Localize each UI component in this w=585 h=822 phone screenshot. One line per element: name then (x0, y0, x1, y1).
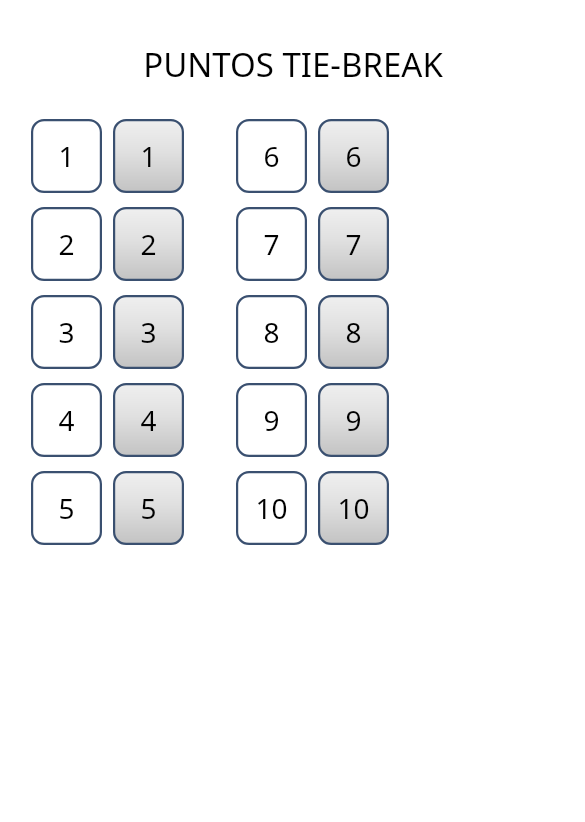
button[interactable]: 3 (113, 295, 184, 369)
button[interactable]: 8 (318, 295, 389, 369)
staticText: 3 (140, 313, 157, 351)
staticText: 6 (263, 137, 280, 175)
staticText: 5 (140, 489, 157, 527)
staticText: 1 (58, 137, 75, 175)
staticText: 10 (255, 489, 288, 527)
staticText: 8 (345, 313, 362, 351)
button[interactable]: 9 (236, 383, 307, 457)
button[interactable]: 2 (113, 207, 184, 281)
staticText: 10 (337, 489, 370, 527)
staticText: 7 (345, 225, 362, 263)
button[interactable]: 7 (236, 207, 307, 281)
staticText: 9 (345, 401, 362, 439)
button[interactable]: 7 (318, 207, 389, 281)
button[interactable]: 6 (236, 119, 307, 193)
staticText: 2 (58, 225, 75, 263)
staticText: 4 (140, 401, 157, 439)
staticText: 2 (140, 225, 157, 263)
button[interactable]: 6 (318, 119, 389, 193)
button[interactable]: 3 (31, 295, 102, 369)
staticText: 8 (263, 313, 280, 351)
staticText: 7 (263, 225, 280, 263)
button[interactable]: 10 (318, 471, 389, 545)
button[interactable]: 5 (31, 471, 102, 545)
button[interactable]: 4 (31, 383, 102, 457)
staticText: 1 (140, 137, 157, 175)
button[interactable]: 4 (113, 383, 184, 457)
staticText: 6 (345, 137, 362, 175)
staticText: PUNTOS TIE-BREAK (143, 42, 443, 87)
button[interactable]: 8 (236, 295, 307, 369)
staticText: 9 (263, 401, 280, 439)
button[interactable]: 1 (113, 119, 184, 193)
button[interactable]: 2 (31, 207, 102, 281)
button[interactable]: 5 (113, 471, 184, 545)
button[interactable]: 10 (236, 471, 307, 545)
button[interactable]: 1 (31, 119, 102, 193)
button[interactable]: 9 (318, 383, 389, 457)
staticText: 4 (58, 401, 75, 439)
staticText: 5 (58, 489, 75, 527)
staticText: 3 (58, 313, 75, 351)
